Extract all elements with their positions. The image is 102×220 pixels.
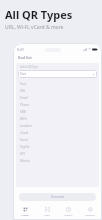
button[interactable]: Location (18, 122, 97, 129)
staticText: Create (21, 213, 29, 216)
staticText: Text (20, 82, 26, 86)
button[interactable]: Generate (19, 193, 96, 201)
staticText: Location (20, 124, 33, 128)
staticText: Scan (44, 213, 50, 216)
staticText: Email (20, 96, 28, 100)
button[interactable]: Bitcoin (18, 157, 97, 164)
button[interactable]: Event (18, 136, 97, 143)
button[interactable]: Create (15, 205, 35, 217)
staticText: Kod list (18, 55, 32, 60)
button[interactable]: UPI (18, 150, 97, 157)
staticText: URL (20, 89, 26, 93)
button[interactable]: SMS (18, 108, 97, 115)
button[interactable]: Text (18, 70, 97, 78)
button[interactable]: vCard (18, 129, 97, 136)
staticText: 9:41 (17, 47, 24, 52)
staticText: Settings (85, 213, 95, 216)
staticText: Bitcoin (20, 159, 30, 163)
staticText: All QR Types (5, 7, 73, 22)
button[interactable]: Phone (18, 101, 97, 108)
staticText: UPI (20, 152, 26, 156)
staticText: Event (20, 138, 28, 142)
button[interactable]: Scan (37, 205, 57, 217)
button[interactable]: Text (18, 80, 97, 87)
staticText: Wi-Fi (20, 117, 27, 121)
button[interactable]: History (58, 205, 78, 217)
button[interactable]: Email (18, 94, 97, 101)
button[interactable]: Settings (80, 205, 100, 217)
staticText: Text (20, 72, 26, 76)
button[interactable]: PayPal (18, 143, 97, 150)
staticText: Generate (51, 195, 65, 199)
staticText: vCard (20, 131, 29, 135)
staticText: SMS (20, 110, 27, 114)
button[interactable]: Wi-Fi (18, 115, 97, 122)
staticText: URL, Wi-Fi, vCard & more (5, 24, 64, 31)
button[interactable]: URL (18, 87, 97, 94)
staticText: Phone (20, 103, 30, 107)
staticText: PayPal (20, 145, 30, 149)
staticText: Select QR Type (20, 65, 38, 69)
staticText: History (64, 213, 73, 216)
